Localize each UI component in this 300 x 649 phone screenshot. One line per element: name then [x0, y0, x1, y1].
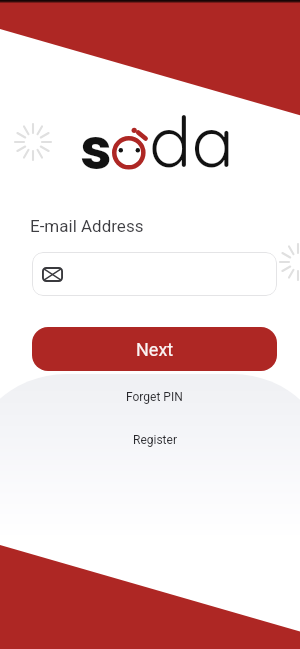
- button[interactable]: E-mail Address input: [32, 252, 277, 296]
- staticText: E-mail Address: [30, 216, 144, 236]
- staticText: Forget PIN: [126, 390, 183, 404]
- staticText: Next: [136, 339, 174, 360]
- button[interactable]: Next: [32, 327, 277, 371]
- staticText: da: [149, 97, 234, 185]
- staticText: Register: [133, 433, 177, 447]
- button[interactable]: Register: [32, 424, 277, 456]
- button[interactable]: Forget PIN: [32, 381, 277, 413]
- staticText: s: [80, 109, 112, 189]
